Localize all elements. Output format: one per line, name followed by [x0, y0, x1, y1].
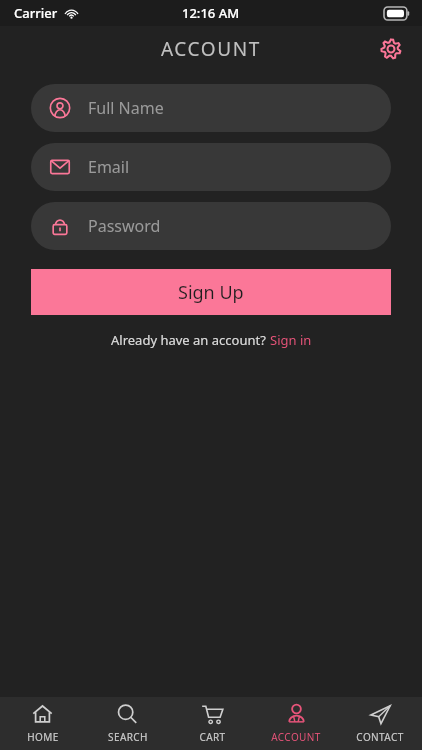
staticText: Full Name [88, 97, 164, 119]
staticText: Password [88, 215, 161, 237]
staticText: Email [88, 156, 130, 178]
button[interactable]: Email [31, 143, 391, 191]
button[interactable]: SEARCH [85, 699, 170, 748]
button[interactable]: CONTACT [338, 699, 422, 748]
staticText: ACCOUNT [161, 36, 261, 62]
button[interactable]: Full Name [31, 84, 391, 132]
button[interactable]: Settings [374, 32, 408, 66]
button[interactable]: CART [170, 699, 254, 748]
staticText: ACCOUNT [271, 730, 321, 744]
staticText: 12:16 AM [182, 4, 240, 22]
button[interactable]: Sign Up [31, 269, 391, 315]
staticText: CONTACT [356, 730, 404, 744]
staticText: Carrier [14, 4, 58, 22]
staticText: SEARCH [108, 730, 148, 744]
staticText: HOME [27, 730, 59, 744]
staticText: Sign in [270, 331, 312, 349]
button[interactable]: ACCOUNT [254, 699, 338, 748]
staticText: CART [199, 730, 226, 744]
staticText: Already have an account? [111, 331, 270, 349]
button[interactable]: Password [31, 202, 391, 250]
button[interactable]: HOME [0, 699, 85, 748]
staticText: Sign Up [178, 280, 244, 305]
button[interactable]: Sign in [270, 331, 312, 349]
